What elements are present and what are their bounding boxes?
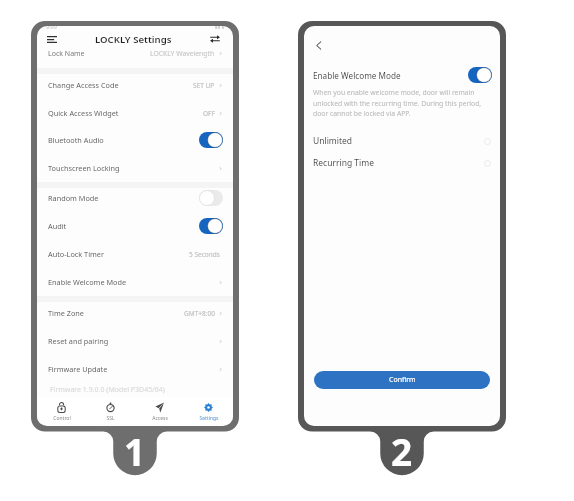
button[interactable]: Switch lock	[207, 31, 223, 47]
staticText: Enable Welcome Mode	[48, 277, 127, 287]
staticText: Settings	[199, 415, 219, 422]
button[interactable]: Toggle	[199, 218, 223, 234]
button[interactable]: Auto-Lock Timer	[37, 245, 233, 263]
staticText: LOCKLY Settings	[95, 33, 172, 46]
staticText: Confirm	[389, 375, 416, 385]
staticText: When you enable welcome mode, door will …	[313, 88, 487, 118]
button[interactable]: Change Access Code	[37, 76, 233, 94]
staticText: 1	[124, 426, 146, 470]
staticText: Firmware Update	[48, 364, 108, 374]
staticText: Access	[152, 415, 168, 422]
staticText: OFF	[203, 109, 215, 118]
button[interactable]: Bluetooth Audio	[37, 131, 233, 149]
staticText: SET UP	[193, 81, 215, 90]
staticText: GMT+8:00	[184, 309, 215, 318]
button[interactable]: Access	[135, 397, 184, 424]
staticText: Time Zone	[48, 308, 84, 318]
staticText: Control	[53, 415, 71, 422]
staticText: Unlimited	[313, 135, 353, 147]
button[interactable]: Time Zone	[37, 304, 233, 322]
button[interactable]: Random Mode	[37, 189, 233, 207]
staticText: Enable Welcome Mode	[313, 70, 401, 81]
button[interactable]: Touchscreen Locking	[37, 159, 233, 177]
staticText: Recurring Time	[313, 157, 374, 169]
button[interactable]: Quick Access Widget	[37, 104, 233, 122]
button[interactable]: Enable Welcome Mode	[304, 65, 500, 85]
button[interactable]: SSL	[86, 397, 135, 424]
staticText: Firmware 1.9.0.0 (Model P3D45/64)	[50, 385, 165, 395]
button[interactable]: Reset and pairing	[37, 332, 233, 350]
button[interactable]: Toggle	[199, 190, 223, 206]
button[interactable]: Recurring Time	[304, 154, 500, 172]
button[interactable]: Settings	[184, 397, 233, 424]
button[interactable]: Enable Welcome Mode	[37, 273, 233, 291]
staticText: Auto-Lock Timer	[48, 249, 104, 259]
staticText: 2	[391, 426, 413, 470]
button[interactable]: Back	[311, 37, 327, 53]
staticText: Change Access Code	[48, 80, 119, 90]
button[interactable]: Audit	[37, 217, 233, 235]
button[interactable]: Control	[37, 397, 86, 424]
button[interactable]: Confirm	[314, 371, 490, 389]
staticText: Bluetooth Audio	[48, 135, 104, 145]
staticText: Quick Access Widget	[48, 108, 119, 118]
button[interactable]: Toggle	[199, 132, 223, 148]
button[interactable]: Firmware Update	[37, 360, 233, 378]
staticText: ▮▮ ▮	[215, 26, 225, 30]
staticText: Lock Name	[48, 49, 85, 59]
staticText: Reset and pairing	[48, 336, 109, 346]
button[interactable]: Menu	[45, 32, 59, 46]
button[interactable]: Lock Name	[37, 46, 233, 61]
button[interactable]: Toggle	[468, 67, 492, 83]
button[interactable]: Unlimited	[304, 132, 500, 150]
staticText: 5 Seconds	[189, 250, 220, 259]
staticText: LOCKLY Wavelength	[150, 49, 215, 58]
staticText: Audit	[48, 221, 67, 231]
staticText: SSL	[106, 415, 115, 422]
staticText: Touchscreen Locking	[48, 163, 120, 173]
staticText: 9:09	[46, 26, 57, 30]
staticText: Random Mode	[48, 193, 99, 203]
